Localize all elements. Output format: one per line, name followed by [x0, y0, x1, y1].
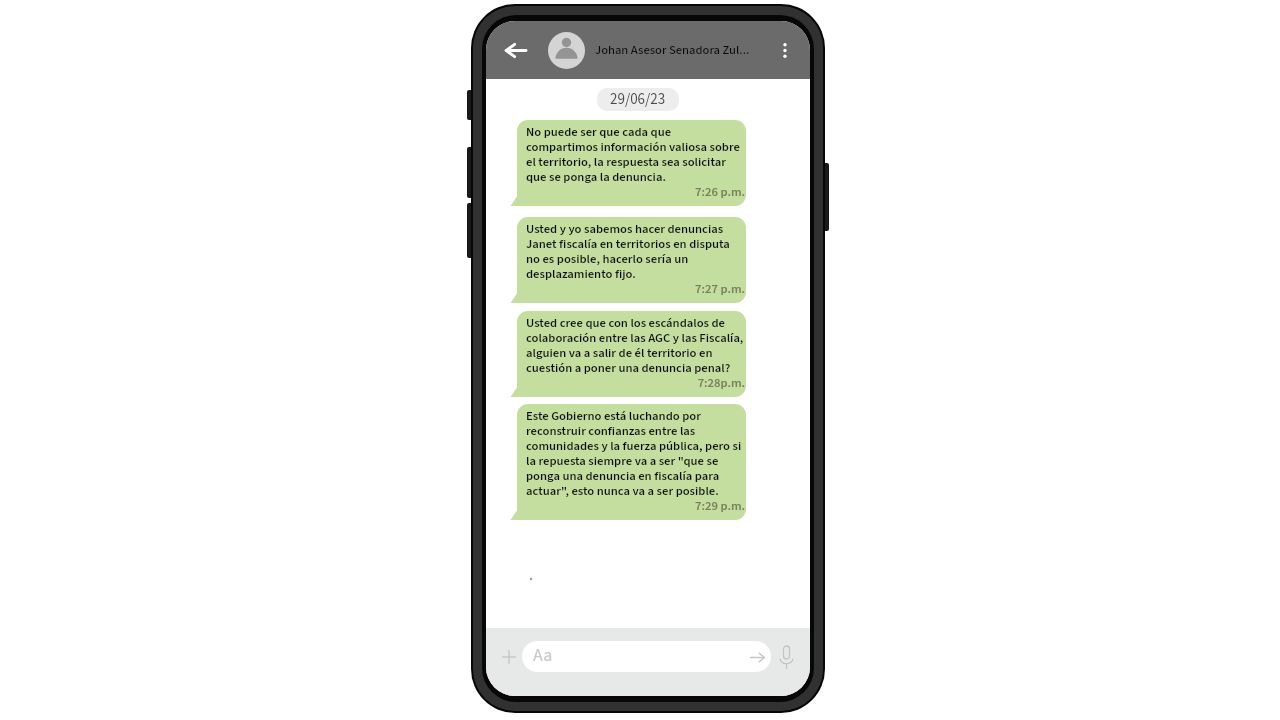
button[interactable]: Voice message	[778, 645, 794, 669]
button[interactable]: Usted y yo sabemos hacer denuncias Janet…	[509, 217, 746, 303]
button[interactable]: Este Gobierno está luchando por reconstr…	[509, 404, 746, 520]
staticText: Este Gobierno está luchando por reconstr…	[526, 409, 745, 499]
button[interactable]: Contact avatar	[548, 32, 585, 69]
button[interactable]: More options	[771, 36, 799, 64]
staticText: 29/06/23	[610, 89, 666, 110]
button[interactable]: Add attachment	[500, 648, 518, 666]
other: Send	[749, 649, 765, 665]
button[interactable]: No puede ser que cada que compartimos in…	[509, 120, 746, 206]
staticText: Aa	[533, 643, 553, 669]
button[interactable]: Aa	[522, 641, 771, 672]
staticText: Usted y yo sabemos hacer denuncias Janet…	[526, 222, 745, 282]
staticText: No puede ser que cada que compartimos in…	[526, 125, 745, 185]
staticText: 7:28p.m.	[526, 376, 745, 391]
staticText: 7:26 p.m.	[526, 185, 745, 200]
button[interactable]: 29/06/23	[597, 88, 679, 111]
staticText: 7:29 p.m.	[526, 499, 745, 514]
button[interactable]: Back	[500, 35, 530, 65]
button[interactable]: Usted cree que con los escándalos de col…	[509, 311, 746, 397]
staticText: Usted cree que con los escándalos de col…	[526, 316, 745, 376]
staticText: Johan Asesor Senadora Zul...	[595, 41, 750, 59]
staticText: 7:27 p.m.	[526, 282, 745, 297]
